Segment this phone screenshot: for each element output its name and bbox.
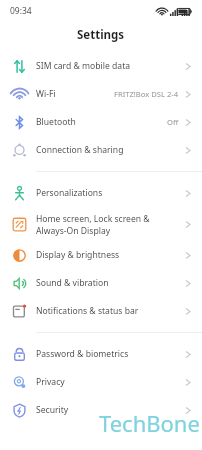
button[interactable]: Security [0, 396, 202, 424]
button[interactable]: Personalizations [0, 179, 202, 207]
staticText: Settings [77, 27, 125, 43]
button[interactable]: Display & brightness [0, 241, 202, 269]
staticText: Personalizations [36, 187, 103, 199]
staticText: 09:34 [10, 5, 32, 17]
staticText: Sound & vibration [36, 277, 109, 289]
staticText: FRITZ!Box DSL 2-4 [114, 89, 179, 99]
staticText: Wi-Fi [36, 88, 56, 100]
staticText: SIM card & mobile data [36, 60, 131, 72]
button[interactable]: Privacy [0, 368, 202, 396]
staticText: Bluetooth [36, 116, 76, 128]
staticText: TechBone [99, 408, 200, 438]
staticText: Notifications & status bar [36, 305, 139, 317]
button[interactable]: SIM card & mobile data [0, 52, 202, 80]
staticText: Display & brightness [36, 249, 120, 261]
staticText: Connection & sharing [36, 144, 124, 156]
button[interactable]: Bluetooth [0, 108, 202, 136]
button[interactable]: Home screen, Lock screen & Always-On Dis… [0, 207, 202, 241]
button[interactable]: Notifications & status bar [0, 297, 202, 325]
button[interactable]: Password & biometrics [0, 340, 202, 368]
button[interactable]: Wi-Fi [0, 80, 202, 108]
staticText: Privacy [36, 376, 65, 388]
staticText: Security [36, 404, 69, 416]
staticText: Home screen, Lock screen & Always-On Dis… [36, 213, 150, 236]
button[interactable]: Connection & sharing [0, 136, 202, 164]
staticText: Password & biometrics [36, 348, 129, 360]
button[interactable]: Sound & vibration [0, 269, 202, 297]
staticText: Off [167, 117, 179, 127]
